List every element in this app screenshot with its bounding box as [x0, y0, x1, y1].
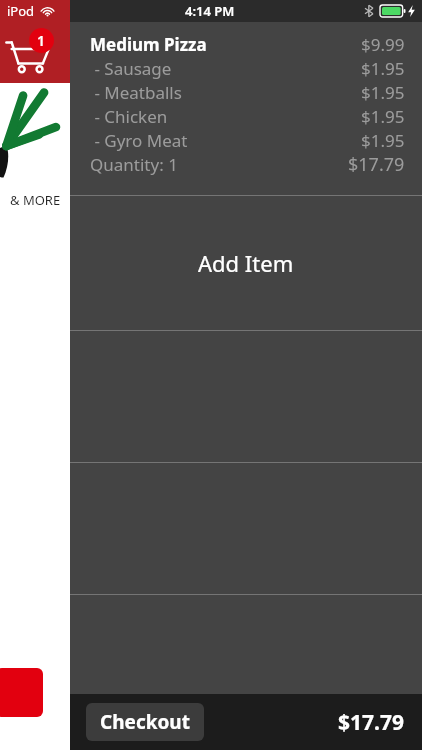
staticText: - Chicken: [90, 105, 168, 128]
staticText: $1.95: [361, 57, 405, 80]
staticText: $1.95: [361, 129, 405, 152]
staticText: - Meatballs: [90, 81, 182, 104]
staticText: $1.95: [361, 105, 405, 128]
button[interactable]: Cart: [0, 22, 70, 83]
staticText: & MORE: [10, 191, 61, 209]
button[interactable]: Add Item: [70, 196, 422, 330]
staticText: Add Item: [198, 248, 294, 278]
button[interactable]: Checkout: [86, 703, 204, 741]
staticText: 4:14 PM: [185, 2, 235, 20]
staticText: Quantity: 1: [90, 153, 178, 176]
staticText: Checkout: [100, 709, 190, 735]
staticText: iPod: [7, 2, 35, 20]
staticText: Medium Pizza: [90, 33, 207, 56]
staticText: 1: [37, 31, 46, 50]
button[interactable]: Brand logo: [0, 668, 43, 717]
staticText: $17.79: [338, 708, 404, 737]
staticText: - Sausage: [90, 57, 172, 80]
staticText: $17.79: [348, 152, 405, 176]
staticText: $1.95: [361, 81, 405, 104]
button[interactable]: Medium Pizza: [90, 32, 405, 195]
staticText: $9.99: [361, 33, 405, 56]
staticText: - Gyro Meat: [90, 129, 188, 152]
